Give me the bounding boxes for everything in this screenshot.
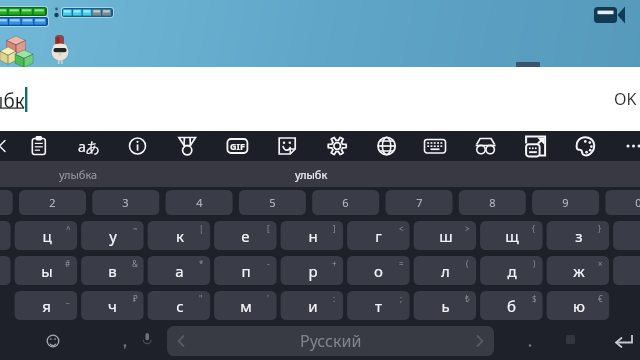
button[interactable]: 5 — [239, 190, 306, 215]
staticText: ( — [466, 258, 469, 269]
staticText: и — [308, 296, 318, 316]
button[interactable]: 8 — [459, 190, 526, 215]
button[interactable]: э — [613, 256, 640, 285]
staticText: а — [175, 261, 184, 281]
button[interactable]: GIF — [215, 131, 259, 161]
button[interactable]: а — [148, 256, 211, 285]
staticText: г — [375, 226, 382, 246]
staticText: ~ — [133, 223, 138, 234]
button[interactable]: щ — [480, 221, 543, 250]
button[interactable]: Info — [116, 131, 160, 161]
staticText: | — [199, 223, 204, 234]
staticText: [ — [267, 223, 270, 234]
staticText: 8 — [489, 195, 496, 210]
button[interactable]: улыбка — [0, 161, 156, 187]
staticText: ш — [439, 226, 453, 246]
staticText: 0 — [635, 195, 640, 210]
button[interactable]: м — [214, 291, 277, 320]
button[interactable]: о — [347, 256, 410, 285]
button[interactable]: и — [281, 291, 344, 320]
button[interactable]: д — [480, 256, 543, 285]
button[interactable]: 2 — [19, 190, 86, 215]
staticText: 3 — [122, 195, 129, 210]
button[interactable]: Theme — [564, 131, 608, 161]
button[interactable]: б — [480, 291, 543, 320]
button[interactable]: Back — [0, 131, 44, 161]
button[interactable]: 3 — [92, 190, 159, 215]
button[interactable]: ю — [547, 291, 610, 320]
button[interactable]: Русский — [167, 326, 494, 356]
button[interactable]: ж — [547, 256, 610, 285]
staticText: ы — [41, 261, 53, 281]
button[interactable]: я — [15, 291, 78, 320]
button[interactable]: 0 — [605, 190, 640, 215]
button[interactable]: ыбк — [0, 88, 25, 114]
staticText: } — [598, 223, 602, 234]
button[interactable]: 7 — [386, 190, 453, 215]
button[interactable]: Translate — [365, 131, 409, 161]
button[interactable]: Emoji — [36, 327, 66, 357]
staticText: : — [333, 293, 336, 304]
button[interactable]: 1 — [0, 190, 13, 215]
staticText: * — [199, 258, 204, 269]
button[interactable]: ш — [414, 221, 477, 250]
button[interactable]: Stickers award — [165, 131, 209, 161]
staticText: р — [308, 261, 318, 281]
button[interactable]: улыбк — [233, 161, 389, 187]
staticText: { — [532, 223, 536, 234]
staticText: 6 — [342, 195, 349, 210]
staticText: = — [399, 258, 404, 269]
staticText: ) — [533, 258, 536, 269]
staticText: $ — [532, 293, 537, 304]
staticText: ₽ — [133, 293, 138, 304]
button[interactable]: г — [347, 221, 410, 250]
staticText: # — [65, 258, 71, 269]
button[interactable]: Resize keyboard — [514, 131, 558, 161]
button[interactable]: н — [281, 221, 344, 250]
button[interactable]: т — [347, 291, 410, 320]
button[interactable]: Clipboard — [17, 131, 61, 161]
button[interactable]: з — [547, 221, 610, 250]
button[interactable]: Enter — [610, 327, 640, 357]
staticText: ц — [42, 226, 52, 246]
staticText: OK — [614, 88, 637, 110]
staticText: + — [332, 258, 337, 269]
staticText: ^ — [66, 223, 71, 234]
staticText: к — [176, 226, 184, 246]
button[interactable]: л — [414, 256, 477, 285]
button[interactable]: Incognito — [464, 131, 508, 161]
staticText: ю — [573, 296, 585, 316]
button[interactable]: с — [148, 291, 211, 320]
button[interactable]: й — [0, 221, 11, 250]
staticText: улыбка — [59, 167, 98, 182]
button[interactable]: ы — [15, 256, 78, 285]
staticText: ] — [333, 223, 336, 234]
staticText: _ — [66, 293, 70, 304]
button[interactable]: р — [281, 256, 344, 285]
button[interactable]: ь — [414, 291, 477, 320]
staticText: з — [575, 226, 583, 246]
button[interactable]: х — [613, 221, 640, 250]
button[interactable]: в — [81, 256, 144, 285]
button[interactable]: 4 — [166, 190, 233, 215]
button[interactable]: ч — [81, 291, 144, 320]
button[interactable]: 9 — [532, 190, 599, 215]
button[interactable]: Keyboard — [413, 131, 457, 161]
button[interactable]: ц — [15, 221, 78, 250]
button[interactable]: More options — [612, 131, 640, 161]
button[interactable]: Language — [66, 131, 110, 161]
button[interactable]: е — [214, 221, 277, 250]
button[interactable]: ф — [0, 256, 11, 285]
button[interactable]: Sticker — [265, 131, 309, 161]
button[interactable]: у — [81, 221, 144, 250]
staticText: ж — [573, 261, 585, 281]
button[interactable]: 6 — [312, 190, 379, 215]
button[interactable]: к — [148, 221, 211, 250]
staticText: × — [598, 258, 603, 269]
staticText: Русский — [300, 330, 362, 352]
button[interactable]: OK — [614, 67, 640, 131]
staticText: ' — [267, 293, 269, 304]
button[interactable]: п — [214, 256, 277, 285]
button[interactable]: Settings — [315, 131, 359, 161]
staticText: 7 — [416, 195, 423, 210]
